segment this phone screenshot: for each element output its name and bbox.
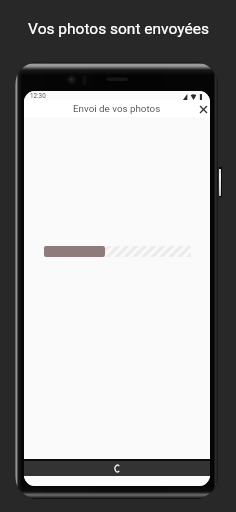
button[interactable]: Fermer — [196, 102, 210, 116]
staticText: Envoi de vos photos — [73, 103, 161, 114]
staticText: 12:30 — [30, 92, 46, 99]
staticText: Vos photos sont envoyées — [28, 20, 209, 38]
button[interactable]: Retour — [114, 464, 121, 473]
